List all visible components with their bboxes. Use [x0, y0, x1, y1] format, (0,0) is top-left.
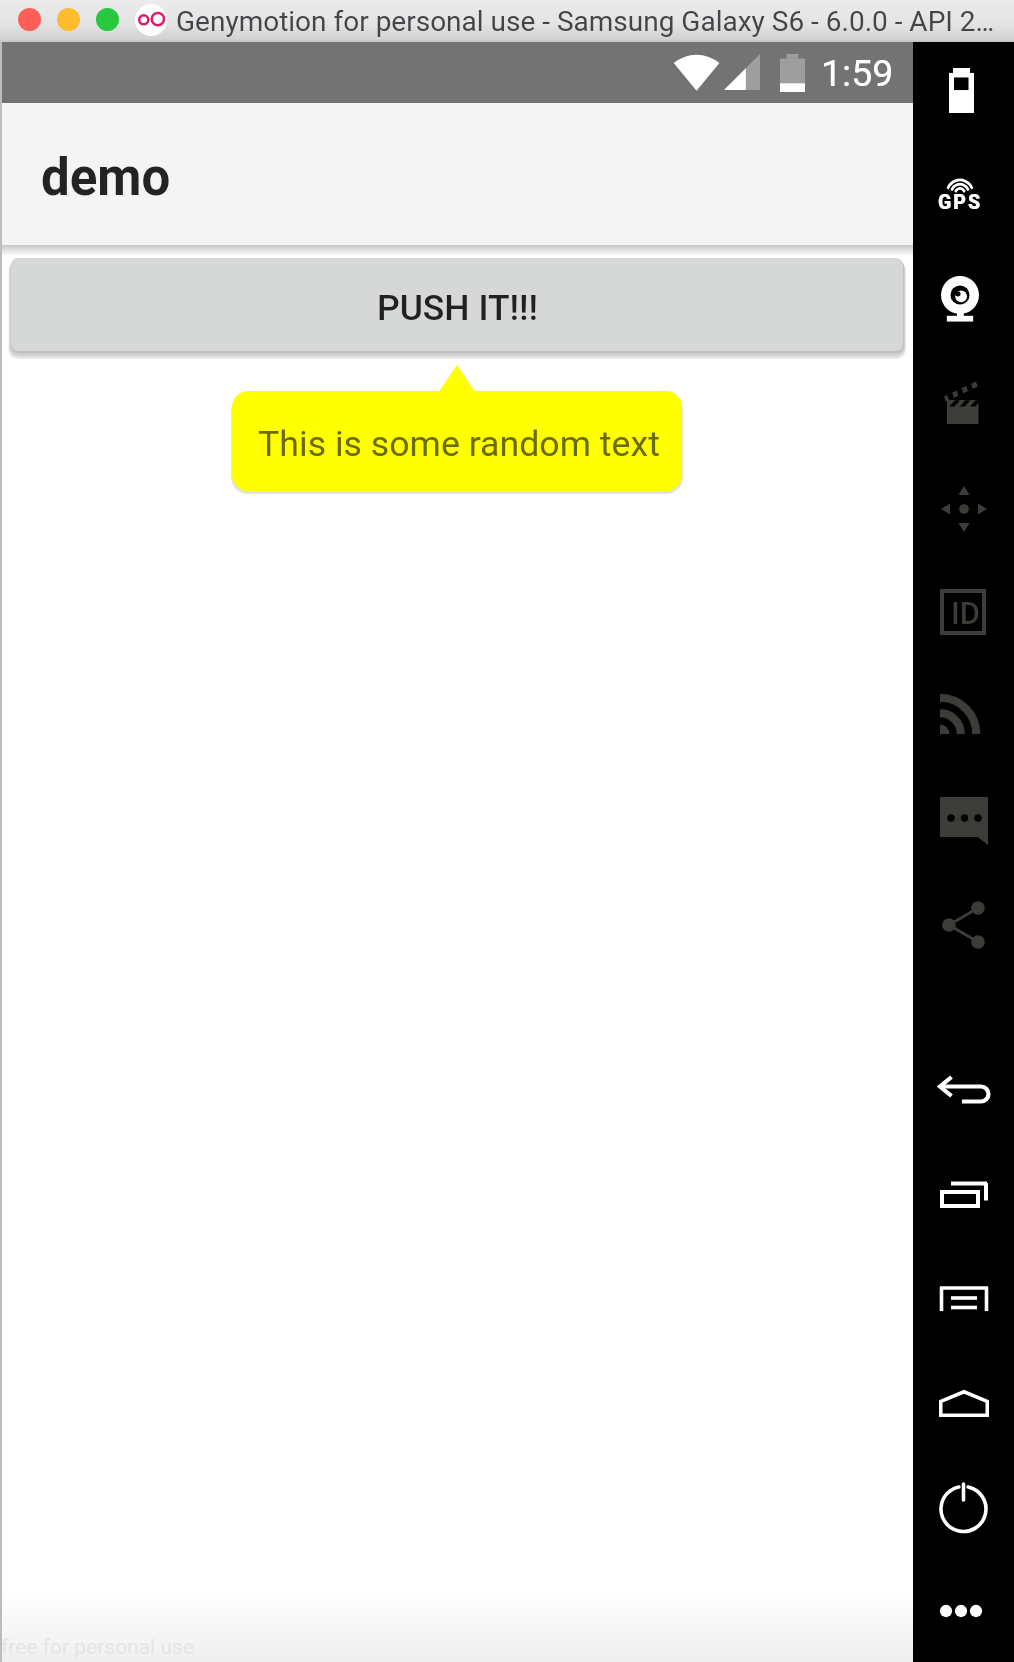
staticText: 1:59 [821, 51, 894, 95]
button[interactable]: Share [942, 901, 986, 949]
button[interactable]: Network [940, 693, 981, 734]
staticText: GPS [938, 191, 983, 214]
button[interactable]: This is some random text [232, 391, 682, 491]
staticText: ID [951, 595, 981, 631]
button[interactable]: Messages [940, 797, 988, 845]
button[interactable]: Close window [18, 8, 41, 31]
button[interactable]: Device identifiers [940, 589, 986, 635]
staticText: This is some random text [258, 423, 660, 465]
button[interactable]: Battery [949, 68, 974, 113]
staticText: Genymotion for personal use - Samsung Ga… [176, 5, 995, 38]
button[interactable]: Genymotion [135, 4, 167, 36]
staticText: PUSH IT!!! [377, 287, 539, 329]
staticText: free for personal use [1, 1635, 195, 1660]
button[interactable]: More options [940, 1604, 982, 1618]
button[interactable]: Back [939, 1074, 991, 1108]
button[interactable]: Maximize window [96, 8, 119, 31]
button[interactable]: Webcam [940, 276, 980, 322]
button[interactable]: Minimize window [57, 8, 80, 31]
button[interactable]: Home [939, 1390, 989, 1417]
button[interactable]: PUSH IT!!! [11, 258, 903, 351]
button[interactable]: Rotate device [941, 486, 987, 532]
button[interactable]: Screen recording [942, 379, 982, 427]
button[interactable]: Recent apps [939, 1182, 989, 1210]
button[interactable]: GPS [937, 174, 991, 214]
staticText: demo [41, 148, 171, 208]
button[interactable]: Menu [939, 1286, 989, 1312]
button[interactable]: Power [937, 1481, 989, 1533]
